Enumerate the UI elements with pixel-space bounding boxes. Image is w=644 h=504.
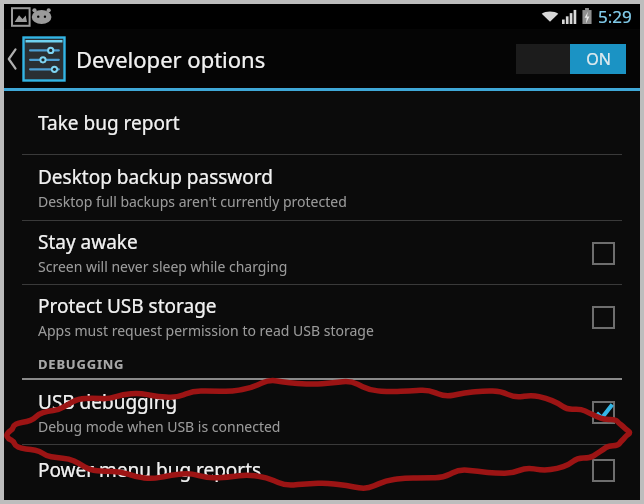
staticText: Screen will never sleep while charging: [38, 257, 288, 276]
staticText: Desktop full backups aren't currently pr…: [38, 192, 347, 211]
button[interactable]: USB debugging: [4, 380, 640, 444]
button[interactable]: Protect USB storage: [584, 298, 622, 336]
staticText: Power menu bug reports: [38, 457, 262, 483]
button[interactable]: Take bug report: [4, 91, 640, 154]
staticText: Desktop backup password: [38, 164, 273, 190]
button[interactable]: Stay awake: [4, 221, 640, 284]
staticText: ON: [586, 48, 611, 70]
button[interactable]: Desktop backup password: [4, 155, 640, 220]
staticText: 5:29: [598, 5, 632, 28]
staticText: Take bug report: [38, 110, 180, 136]
button[interactable]: Protect USB storage: [4, 285, 640, 348]
button[interactable]: Stay awake: [584, 234, 622, 272]
staticText: Apps must request permission to read USB…: [38, 321, 374, 340]
staticText: DEBUGGING: [38, 355, 125, 373]
staticText: Debug mode when USB is connected: [38, 417, 281, 436]
staticText: Stay awake: [38, 229, 138, 255]
button[interactable]: Power menu bug reports: [584, 451, 622, 489]
button[interactable]: Navigate up: [4, 29, 66, 88]
button[interactable]: Power menu bug reports: [4, 445, 640, 495]
button[interactable]: Developer options on: [516, 44, 626, 74]
staticText: Protect USB storage: [38, 293, 217, 319]
staticText: USB debugging: [38, 389, 178, 415]
staticText: Developer options: [76, 44, 516, 74]
button[interactable]: USB debugging: [584, 393, 622, 431]
